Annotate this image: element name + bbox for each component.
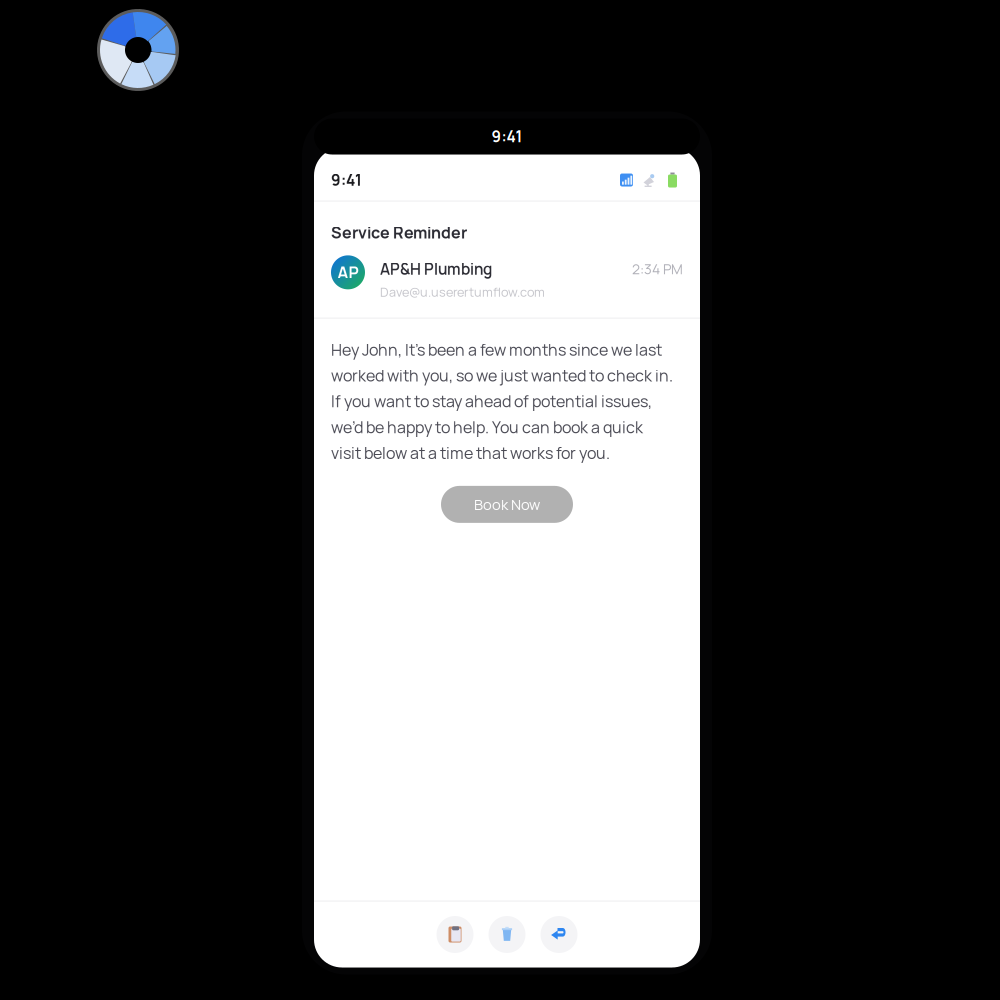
- staticText: 9:41: [491, 126, 522, 147]
- staticText: AP: [337, 261, 358, 283]
- staticText: Dave@u.userertumflow.com: [380, 283, 545, 301]
- staticText: Hey John, It’s been a few months since w…: [331, 339, 673, 464]
- staticText: Book Now: [474, 494, 540, 514]
- staticText: 9:41: [331, 169, 362, 190]
- staticText: Service Reminder: [331, 221, 467, 243]
- staticText: AP&H Plumbing: [380, 258, 492, 279]
- button[interactable]: Copy: [436, 916, 473, 953]
- button[interactable]: Reply: [540, 916, 577, 953]
- button[interactable]: Book Now: [441, 486, 573, 523]
- staticText: 2:34 PM: [632, 259, 683, 278]
- button[interactable]: Delete: [488, 916, 525, 953]
